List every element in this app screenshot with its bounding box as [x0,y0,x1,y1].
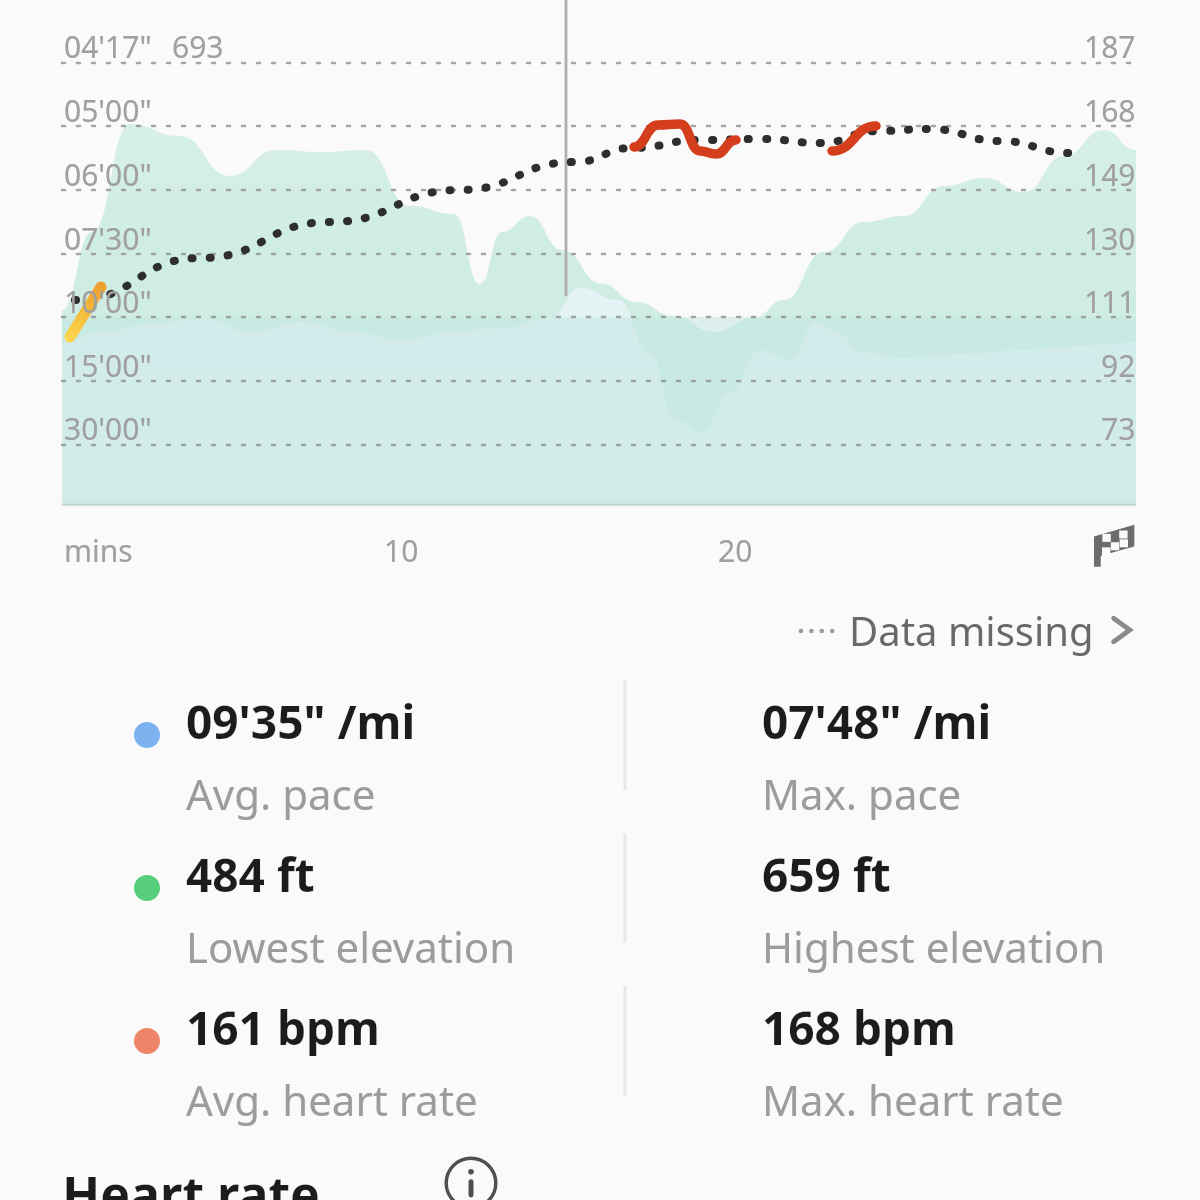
staticText: 149 [1084,154,1136,195]
staticText: 693 [172,26,224,67]
staticText: 04'17" [64,26,152,67]
staticText: 484 ft [186,843,315,906]
staticText: 168 bpm [762,996,956,1059]
staticText: 10 [384,530,419,571]
staticText: 73 [1101,408,1136,449]
staticText: 09'35" /mi [186,690,416,753]
staticText: 168 [1084,90,1136,131]
staticText: 659 ft [762,843,891,906]
button[interactable]: 168 bpm [762,996,1064,1128]
staticText: 130 [1084,218,1136,259]
button[interactable]: 161 bpm [186,996,478,1128]
staticText: Data missing [849,603,1094,657]
staticText: Lowest elevation [186,918,516,975]
staticText: 07'48" /mi [762,690,992,753]
button[interactable]: Data missing [0,598,1200,662]
staticText: 06'00" [64,154,152,195]
staticText: 07'30" [64,218,152,259]
button[interactable]: Heart rate info [440,1152,502,1200]
staticText: Avg. heart rate [186,1071,478,1128]
staticText: Max. heart rate [762,1071,1064,1128]
staticText: 05'00" [64,90,152,131]
staticText: mins [64,530,133,571]
staticText: 30'00" [64,408,152,449]
button[interactable]: 09'35" /mi [186,690,416,822]
staticText: Max. pace [762,765,962,822]
button[interactable]: 659 ft [762,843,1106,975]
staticText: Heart rate [62,1160,320,1200]
staticText: Highest elevation [762,918,1106,975]
staticText: 161 bpm [186,996,380,1059]
staticText: 92 [1101,345,1136,386]
staticText: 111 [1084,281,1136,322]
staticText: 10'00" [64,281,152,322]
staticText: 20 [718,530,753,571]
button[interactable]: 484 ft [186,843,516,975]
button[interactable]: 07'48" /mi [762,690,992,822]
staticText: 187 [1084,26,1136,67]
staticText: Avg. pace [186,765,376,822]
staticText: 15'00" [64,345,152,386]
